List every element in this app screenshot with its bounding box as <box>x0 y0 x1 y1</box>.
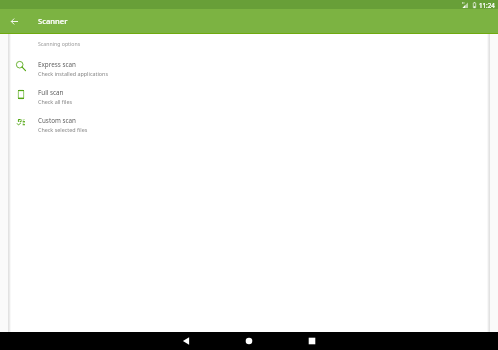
button[interactable]: Navigate up <box>7 14 21 28</box>
staticText: Check installed applications <box>38 70 109 77</box>
button[interactable]: Back <box>176 332 196 350</box>
staticText: 11:24 <box>479 1 495 9</box>
button[interactable]: Home <box>239 332 259 350</box>
staticText: Scanning options <box>38 40 81 47</box>
staticText: Full scan <box>38 88 64 97</box>
button[interactable]: Express scan <box>8 54 490 82</box>
button[interactable]: Full scan <box>8 82 490 110</box>
button[interactable]: Custom scan <box>8 110 490 138</box>
staticText: Check all files <box>38 98 73 105</box>
staticText: Custom scan <box>38 116 76 125</box>
staticText: Scanner <box>38 16 68 26</box>
button[interactable]: Recent apps <box>302 332 322 350</box>
staticText: Check selected files <box>38 126 88 133</box>
staticText: Express scan <box>38 60 76 69</box>
